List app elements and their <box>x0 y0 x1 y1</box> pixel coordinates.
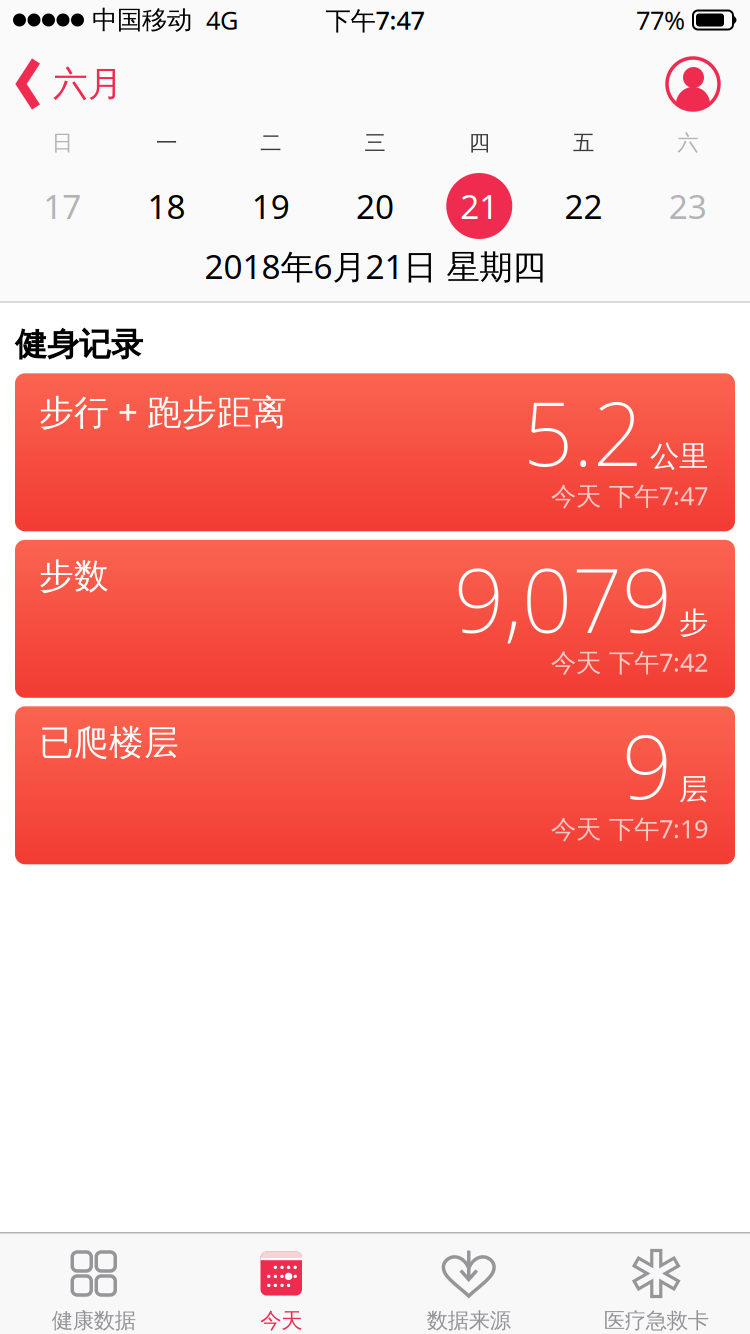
button[interactable]: 步数 <box>15 540 735 698</box>
staticText: 六月 <box>53 63 123 105</box>
staticText: 77% <box>636 3 685 37</box>
button[interactable]: 已爬楼层 <box>15 706 735 864</box>
button[interactable]: 个人信息 <box>667 58 719 110</box>
staticText: 今天 下午7:47 <box>551 479 708 512</box>
staticText: 17 <box>43 184 81 228</box>
staticText: 公里 <box>650 438 708 474</box>
button[interactable]: 18 <box>114 168 219 244</box>
staticText: 医疗急救卡 <box>604 1307 709 1334</box>
staticText: 22 <box>565 184 603 228</box>
button[interactable]: 健康数据 <box>0 1251 187 1334</box>
staticText: 今天 下午7:42 <box>551 645 708 679</box>
button[interactable]: 20 <box>323 168 427 244</box>
staticText: 今天 下午7:19 <box>551 812 708 845</box>
staticText: 四 <box>469 130 490 156</box>
staticText: 5.2 <box>523 373 643 490</box>
staticText: 已爬楼层 <box>39 721 179 764</box>
staticText: 下午7:47 <box>325 3 424 37</box>
staticText: 三 <box>364 130 385 156</box>
staticText: 步行 + 跑步距离 <box>39 388 287 434</box>
staticText: 2018年6月21日 星期四 <box>204 244 545 288</box>
staticText: 数据来源 <box>427 1307 511 1334</box>
button[interactable]: 数据来源 <box>375 1251 562 1334</box>
staticText: 18 <box>147 184 185 228</box>
button[interactable]: 医疗急救卡 <box>562 1251 750 1334</box>
staticText: 今天 <box>260 1307 302 1334</box>
button[interactable]: 22 <box>531 168 636 244</box>
button[interactable]: 23 <box>636 168 740 244</box>
staticText: 21 <box>460 184 498 228</box>
staticText: 健康数据 <box>52 1307 136 1334</box>
staticText: 23 <box>669 184 707 228</box>
staticText: 日 <box>52 130 73 156</box>
staticText: 步数 <box>39 555 109 597</box>
button[interactable]: 步行 + 跑步距离 <box>15 373 735 531</box>
staticText: 二 <box>260 130 281 156</box>
button[interactable]: 17 <box>10 168 114 244</box>
button[interactable]: 19 <box>219 168 323 244</box>
staticText: 4G <box>206 3 238 37</box>
staticText: 步 <box>679 605 708 641</box>
staticText: 五 <box>573 130 594 156</box>
staticText: 9,079 <box>454 540 672 657</box>
staticText: 中国移动 <box>92 4 192 35</box>
staticText: 20 <box>356 184 394 228</box>
staticText: 六 <box>677 130 698 156</box>
button[interactable]: 返回六月 <box>17 58 123 110</box>
staticText: 一 <box>156 130 177 156</box>
button[interactable]: 21 <box>427 168 531 244</box>
staticText: 9 <box>622 706 672 823</box>
staticText: 19 <box>252 184 290 228</box>
staticText: 层 <box>679 771 708 807</box>
button[interactable]: 今天 <box>187 1251 375 1334</box>
staticText: 健身记录 <box>15 325 143 364</box>
